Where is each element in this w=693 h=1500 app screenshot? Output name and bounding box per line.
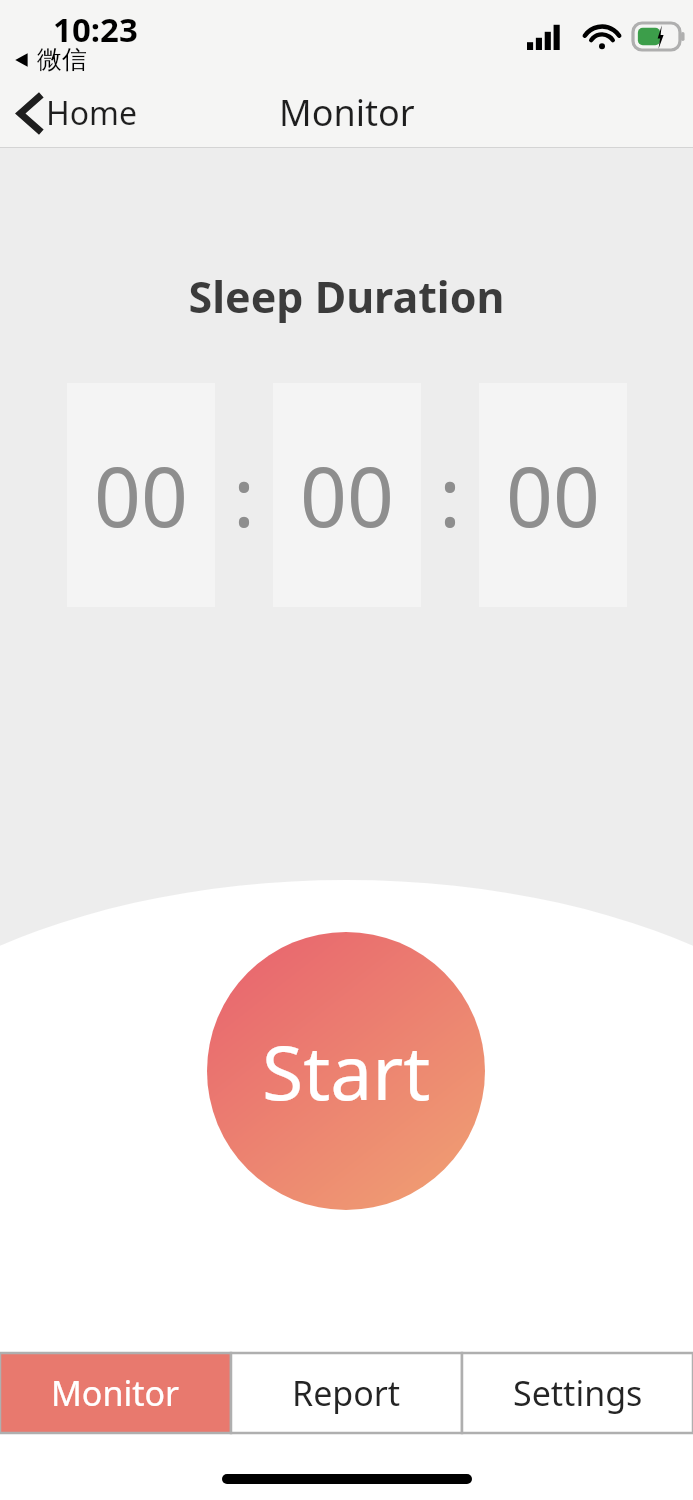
staticText: Sleep Duration xyxy=(0,267,693,326)
staticText: Monitor xyxy=(279,88,415,137)
staticText: : xyxy=(439,439,461,551)
staticText: 00 xyxy=(94,439,188,551)
staticText: : xyxy=(233,439,255,551)
staticText: 10:23 xyxy=(53,7,138,52)
staticText: 00 xyxy=(506,439,600,551)
button[interactable]: Report xyxy=(231,1353,462,1433)
staticText: Settings xyxy=(513,1370,643,1416)
staticText: Home xyxy=(46,91,138,135)
staticText: 00 xyxy=(300,439,394,551)
staticText: 微信 xyxy=(37,44,87,75)
staticText: Report xyxy=(292,1370,401,1416)
button[interactable]: Monitor xyxy=(0,1353,231,1433)
staticText: Start xyxy=(262,1020,431,1122)
button[interactable]: Start xyxy=(207,932,485,1210)
button[interactable]: 微信 xyxy=(14,44,87,75)
button[interactable]: Home xyxy=(0,83,154,143)
staticText: Monitor xyxy=(51,1370,180,1416)
button[interactable]: Settings xyxy=(462,1353,693,1433)
